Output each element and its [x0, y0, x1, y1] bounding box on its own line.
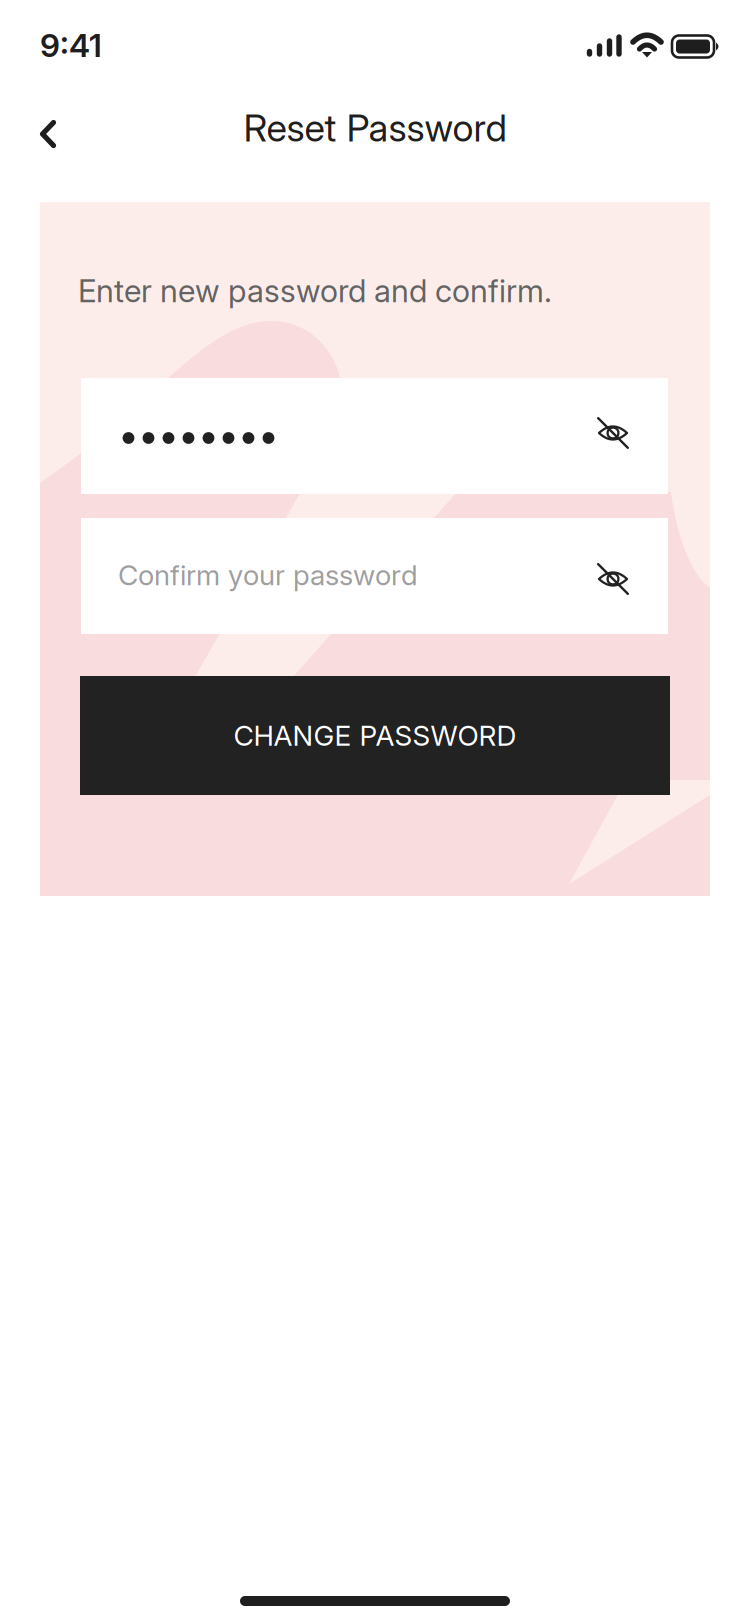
button[interactable]: Confirm your password: [81, 518, 668, 634]
button[interactable]: Back: [24, 98, 96, 158]
staticText: Confirm your password: [118, 558, 418, 592]
button[interactable]: Show confirmation password: [597, 563, 629, 595]
button[interactable]: New password: [81, 378, 668, 494]
button[interactable]: CHANGE PASSWORD: [80, 676, 670, 795]
staticText: Reset Password: [243, 105, 506, 151]
staticText: 9:41: [40, 26, 102, 65]
button[interactable]: Show password: [597, 417, 629, 449]
staticText: Enter new password and confirm.: [78, 272, 552, 310]
staticText: CHANGE PASSWORD: [233, 719, 516, 752]
